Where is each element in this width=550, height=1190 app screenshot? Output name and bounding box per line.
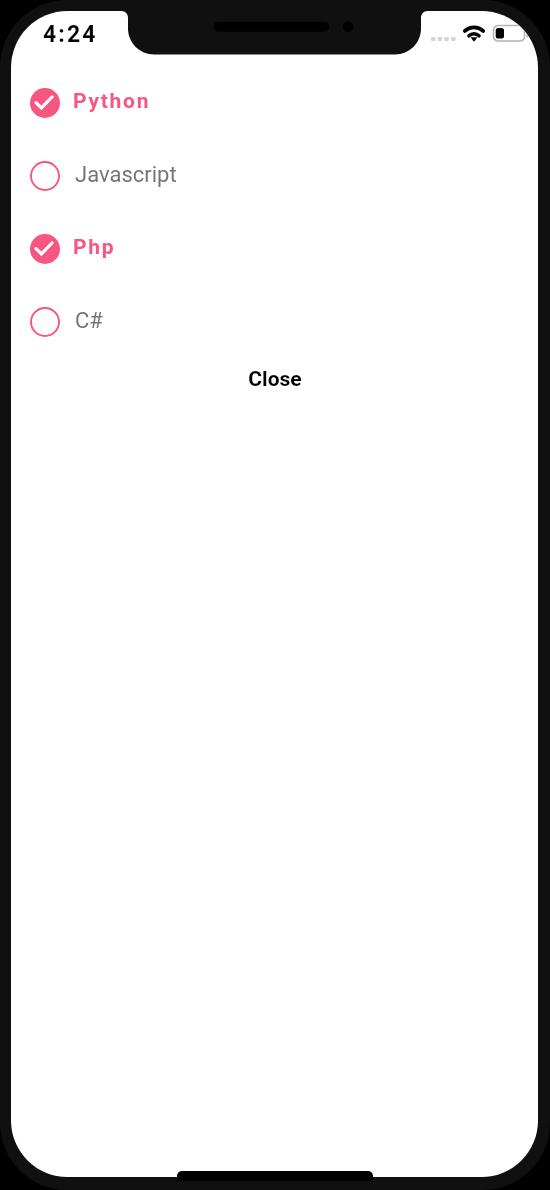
staticText: Javascript [75,162,177,188]
staticText: C# [75,308,103,334]
button[interactable]: Python [11,66,538,139]
staticText: Close [248,367,302,392]
button[interactable]: Php [11,212,538,285]
button[interactable]: Close [11,358,538,405]
button[interactable]: Javascript [11,139,538,212]
button[interactable]: C# [11,285,538,358]
staticText: Python [73,89,151,114]
staticText: Php [73,235,116,260]
staticText: 4:24 [43,21,98,48]
